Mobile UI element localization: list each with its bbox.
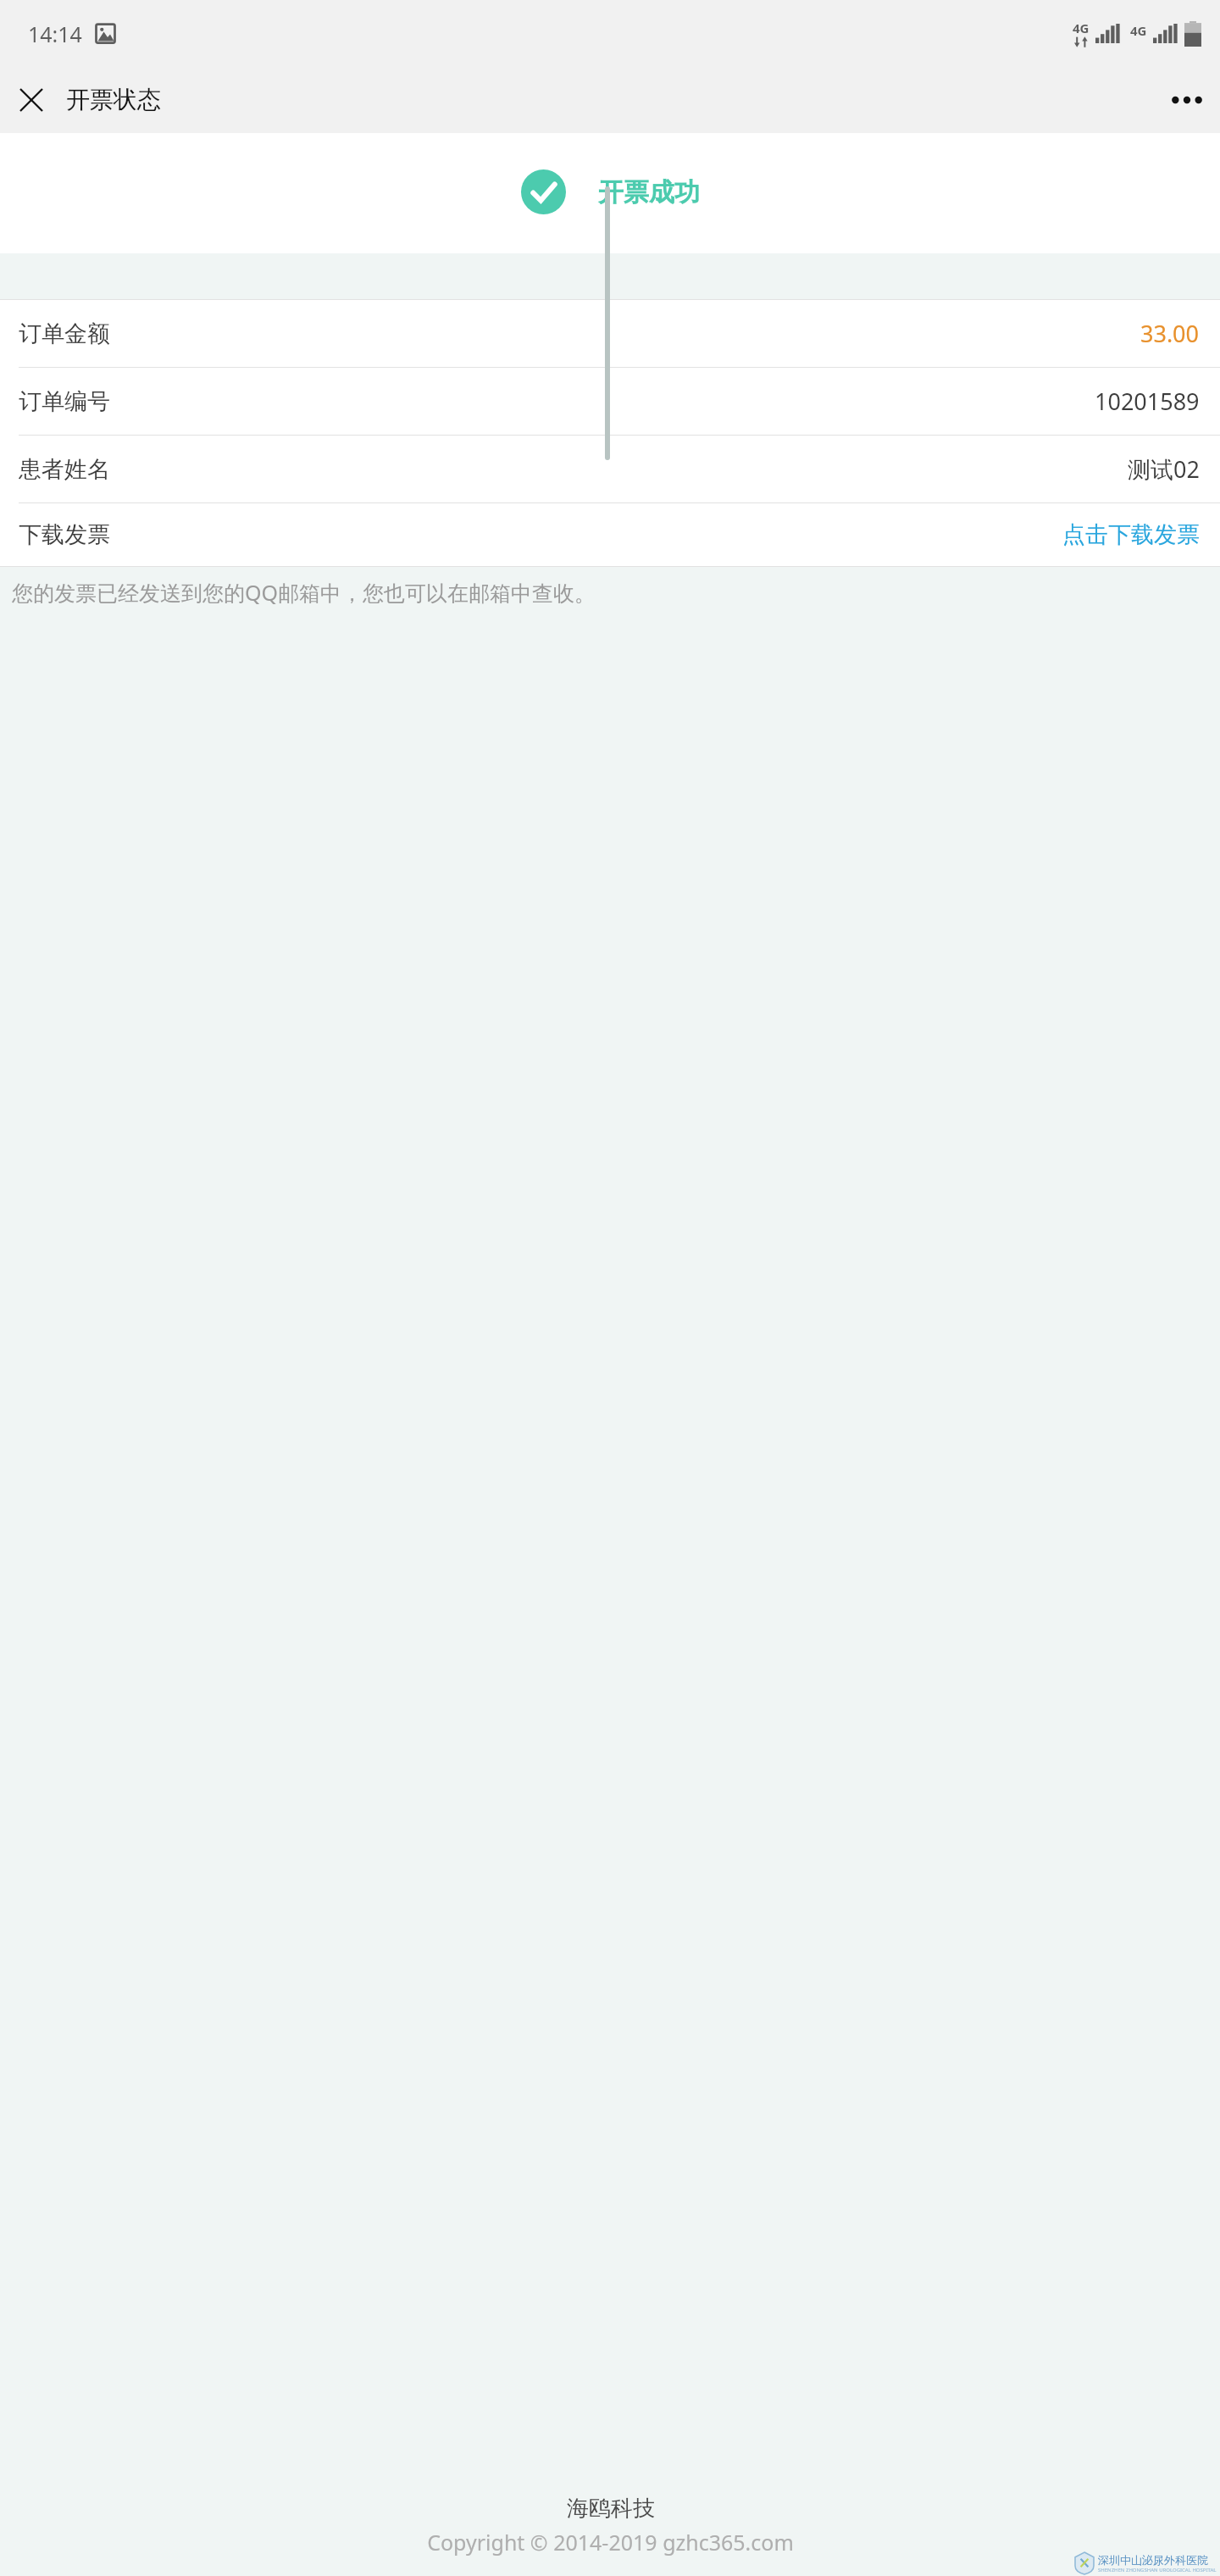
- staticText: 订单金额: [19, 319, 110, 348]
- staticText: 4G: [1130, 22, 1147, 39]
- staticText: Copyright © 2014-2019 gzhc365.com: [427, 2528, 794, 2557]
- button[interactable]: 患者姓名: [0, 436, 1220, 502]
- button[interactable]: 下载发票: [0, 503, 1220, 566]
- staticText: 订单编号: [19, 387, 110, 416]
- staticText: 14:14: [28, 19, 82, 48]
- staticText: 海鸥科技: [567, 2495, 655, 2523]
- button[interactable]: Close: [5, 74, 58, 126]
- button[interactable]: More options: [1161, 74, 1213, 126]
- staticText: 开票成功: [598, 176, 700, 208]
- staticText: 下载发票: [19, 520, 110, 549]
- staticText: 点击下载发票: [1062, 520, 1200, 549]
- staticText: 患者姓名: [19, 455, 110, 484]
- staticText: 测试02: [1128, 453, 1200, 485]
- staticText: 10201589: [1095, 386, 1200, 417]
- button[interactable]: 订单金额: [0, 300, 1220, 367]
- staticText: 33.00: [1140, 318, 1200, 349]
- staticText: 深圳中山泌尿外科医院: [1098, 2553, 1208, 2567]
- button[interactable]: 订单编号: [0, 368, 1220, 435]
- staticText: 您的发票已经发送到您的QQ邮箱中，您也可以在邮箱中查收。: [12, 578, 596, 607]
- staticText: 4G: [1073, 19, 1090, 36]
- staticText: 开票状态: [66, 85, 161, 114]
- staticText: SHENZHEN ZHONGSHAN UROLOGICAL HOSPITAL: [1098, 2567, 1217, 2573]
